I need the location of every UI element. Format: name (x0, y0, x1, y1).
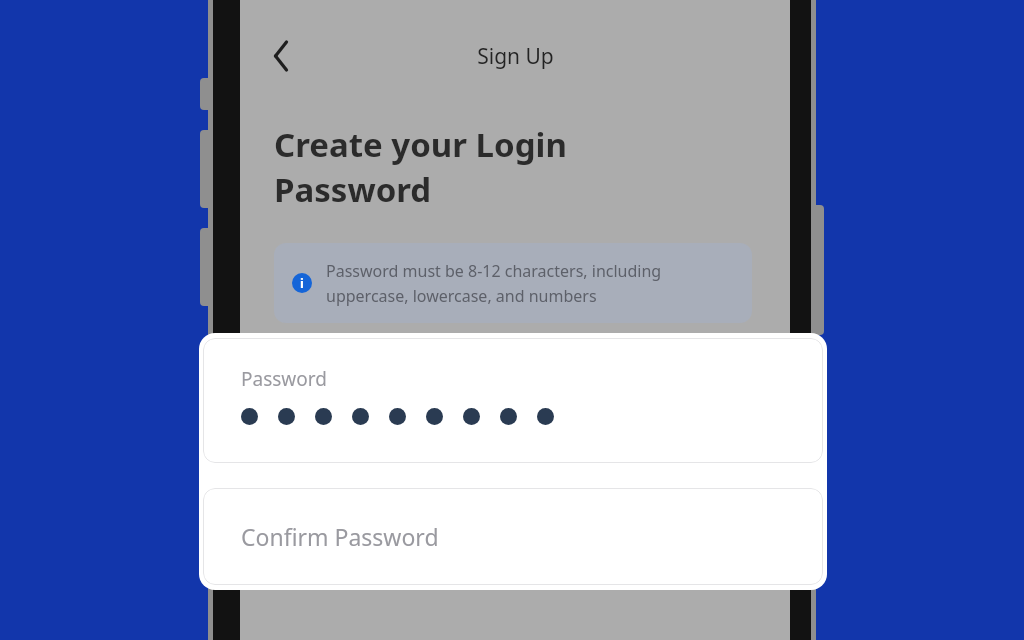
staticText: i (300, 274, 304, 292)
staticText: Sign Up (477, 42, 554, 71)
button[interactable]: Confirm Password (203, 488, 823, 585)
staticText: Create your Login (274, 122, 567, 167)
staticText: Password (274, 167, 432, 212)
staticText: Password must be 8-12 characters, includ… (326, 260, 734, 306)
staticText: Password (241, 366, 327, 392)
button[interactable]: Password (203, 338, 823, 463)
staticText: Confirm Password (241, 521, 439, 552)
button[interactable]: Back (258, 30, 308, 82)
